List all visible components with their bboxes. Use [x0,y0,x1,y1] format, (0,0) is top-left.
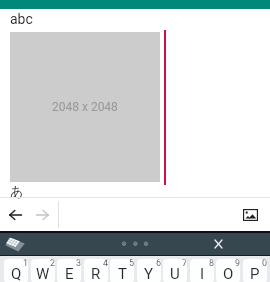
button[interactable]: 7 [163,259,187,282]
staticText: abc [10,11,33,27]
button[interactable]: 6 [137,259,161,282]
button[interactable]: 9 [216,259,240,282]
staticText: R [91,265,101,282]
staticText: W [36,265,50,282]
button[interactable]: Insert image [238,203,262,227]
staticText: 7 [182,259,187,269]
staticText: E [65,265,74,282]
staticText: 6 [156,259,161,269]
staticText: Q [11,265,22,282]
staticText: I [200,265,205,282]
button[interactable]: Forward [30,203,54,227]
staticText: 9 [235,259,240,269]
staticText: 2048 x 2048 [52,100,118,114]
staticText: Y [144,265,154,282]
button[interactable]: 1 [4,259,28,282]
button[interactable]: 4 [84,259,108,282]
staticText: 2 [50,259,55,269]
button[interactable]: 0 [243,259,267,282]
button[interactable]: 2 [31,259,55,282]
staticText: 1 [23,259,28,269]
button[interactable]: Close [207,233,229,255]
staticText: 4 [103,259,108,269]
button[interactable]: Keyboard [4,233,26,255]
staticText: 8 [209,259,214,269]
button[interactable]: Back [3,203,27,227]
staticText: T [118,265,127,282]
button[interactable]: 8 [190,259,214,282]
staticText: P [250,265,260,282]
staticText: 0 [262,259,267,269]
button[interactable]: 3 [57,259,81,282]
button[interactable]: 5 [110,259,134,282]
staticText: あ [10,183,24,199]
staticText: 5 [129,259,134,269]
staticText: U [170,265,180,282]
staticText: O [223,265,234,282]
staticText: 3 [76,259,81,269]
